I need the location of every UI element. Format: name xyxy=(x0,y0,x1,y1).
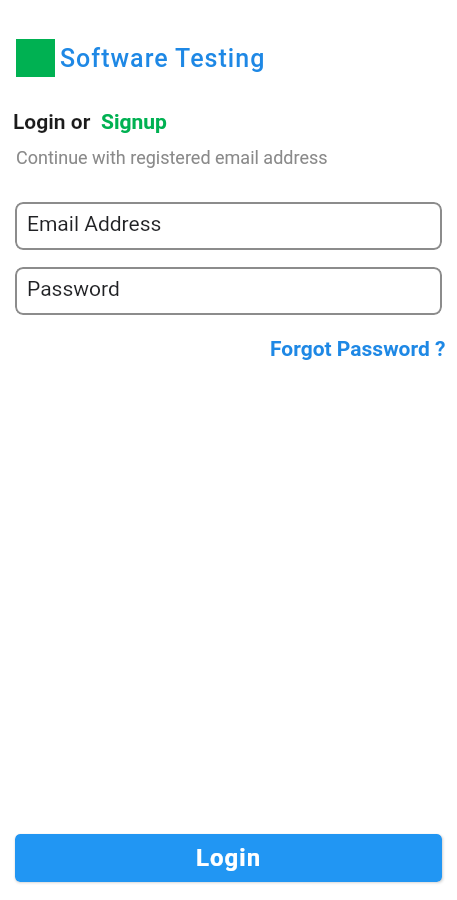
staticText: Email Address xyxy=(27,212,162,237)
staticText: Continue with registered email address xyxy=(16,147,328,168)
button[interactable]: Signup xyxy=(101,110,167,135)
button[interactable]: Forgot Password ? xyxy=(270,337,446,362)
staticText: Password xyxy=(27,277,120,302)
button[interactable]: Login xyxy=(15,834,442,882)
staticText: Login xyxy=(196,844,262,872)
button[interactable]: Password xyxy=(15,267,442,315)
staticText: Login or xyxy=(13,110,91,135)
staticText: Software Testing xyxy=(60,44,266,73)
button[interactable]: Email Address xyxy=(15,202,442,250)
